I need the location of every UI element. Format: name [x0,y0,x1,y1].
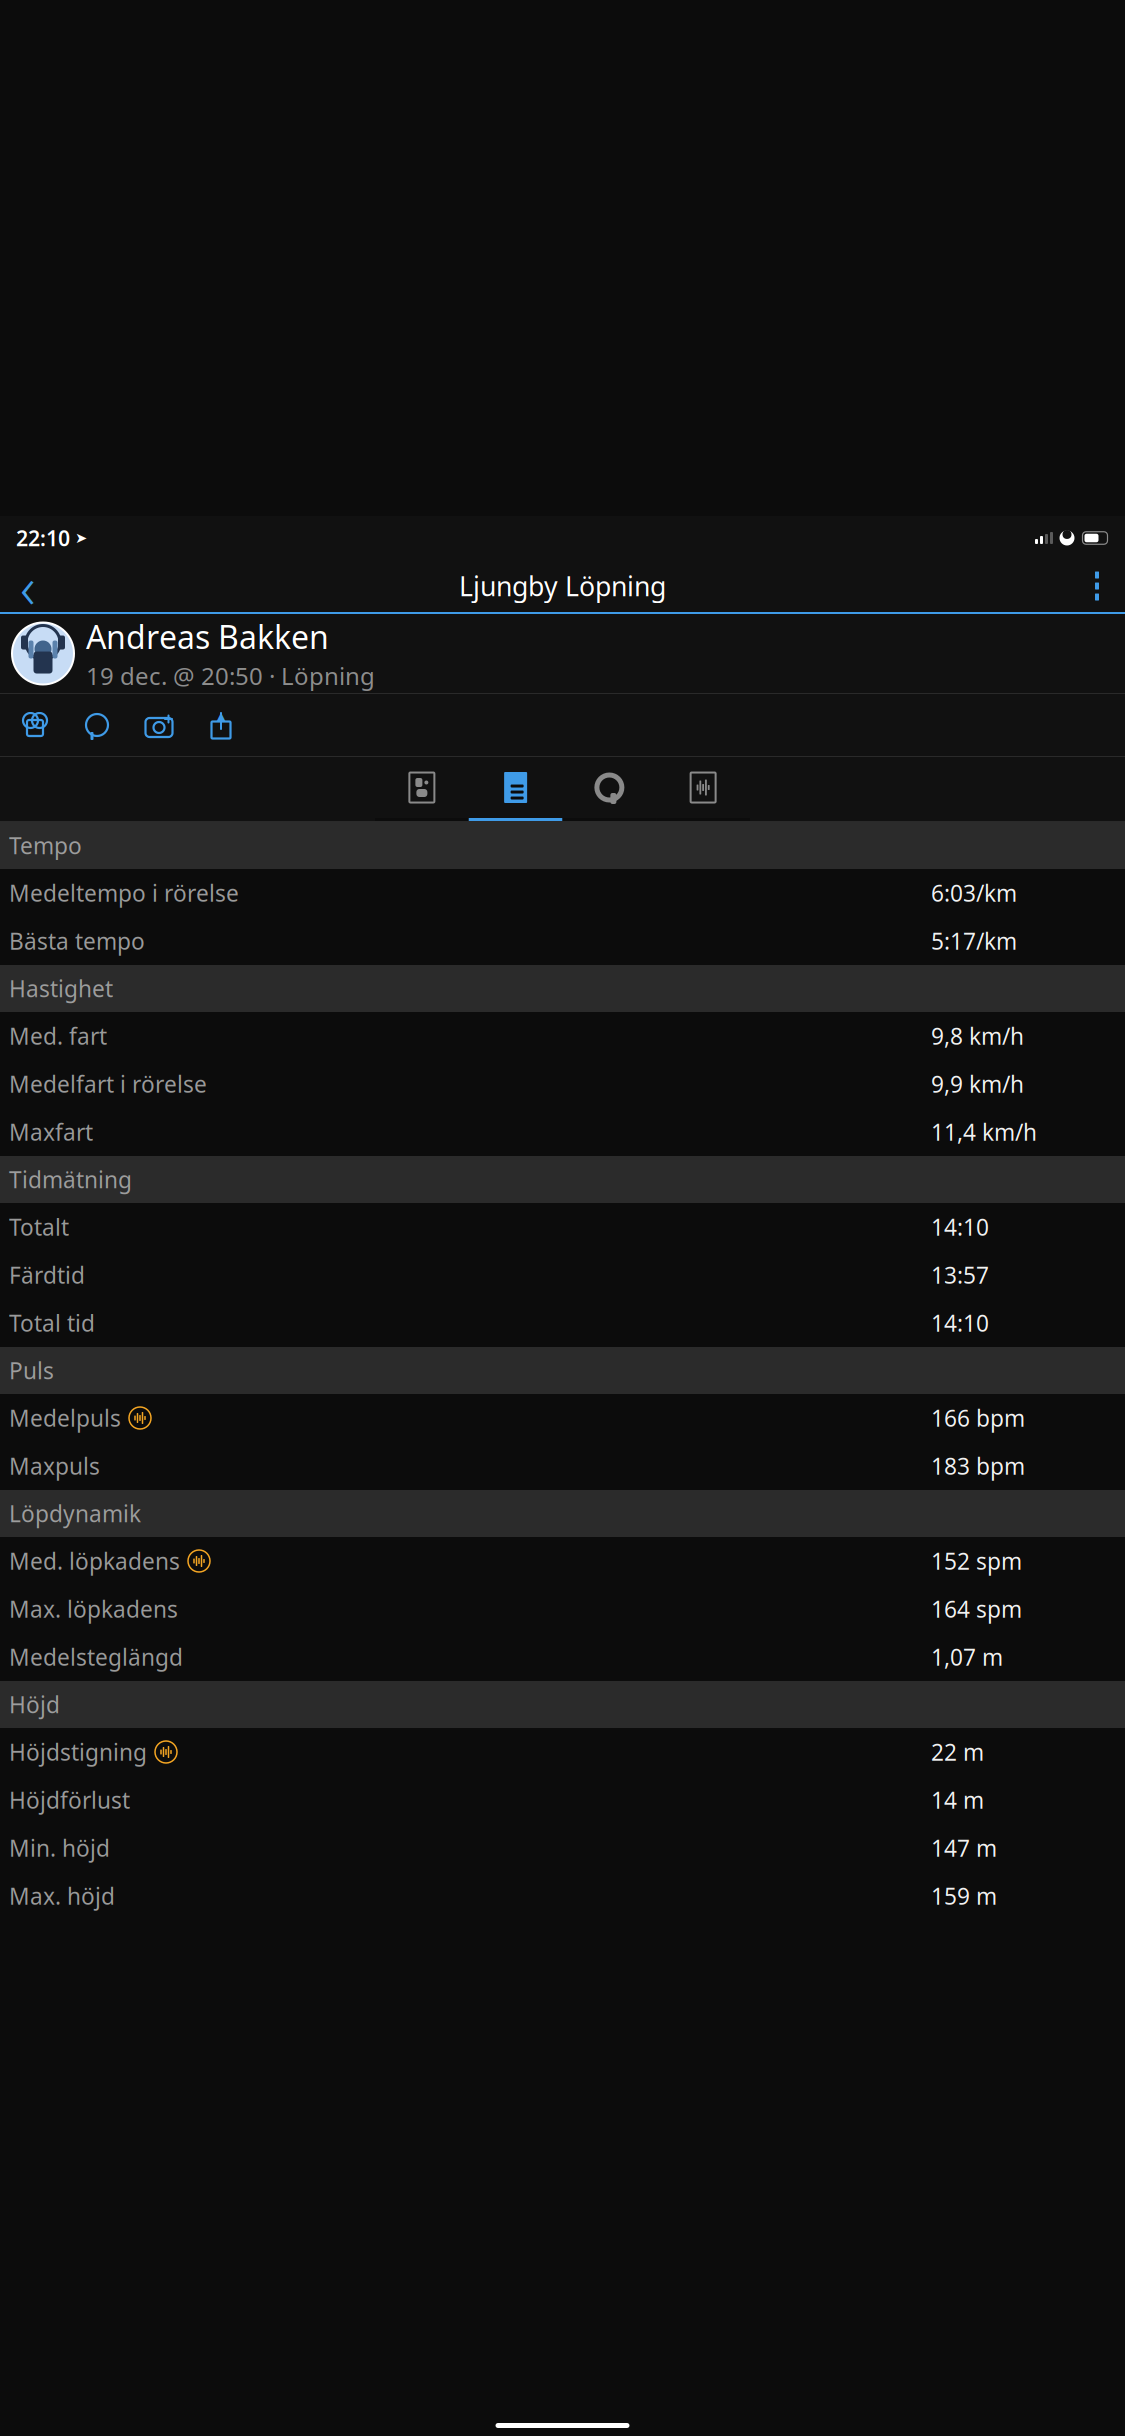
staticText: Total tid [9,1308,95,1338]
button[interactable]: Höjdförlust [0,1776,1125,1824]
staticText: Medeltempo i rörelse [9,878,239,908]
staticText: 6:03/km [931,878,1017,908]
staticText: Hastighet [9,973,113,1003]
staticText: Höjdstigning [9,1737,147,1767]
staticText: Höjdförlust [9,1785,130,1815]
button[interactable]: Med. löpkadens [0,1537,1125,1585]
staticText: 14:10 [931,1212,989,1242]
button[interactable]: More options [1075,564,1119,608]
staticText: Puls [9,1355,54,1385]
button[interactable]: Add photo [128,703,190,747]
button[interactable]: Min. höjd [0,1824,1125,1872]
staticText: Ljungby Löpning [459,568,666,604]
staticText: Medelpuls [9,1403,121,1433]
staticText: Höjd [9,1689,60,1719]
staticText: 183 bpm [931,1451,1025,1481]
staticText: 164 spm [931,1594,1022,1624]
button[interactable]: Map [375,757,469,821]
staticText: 13:57 [931,1260,989,1290]
staticText: 147 m [931,1833,997,1863]
staticText: Löpdynamik [9,1498,141,1528]
button[interactable]: Charts [656,757,750,821]
staticText: 159 m [931,1881,997,1911]
button[interactable]: Medelsteglängd [0,1633,1125,1681]
button[interactable]: Medelpuls [0,1394,1125,1442]
button[interactable]: Andreas Bakken [0,614,1125,693]
staticText: 11,4 km/h [931,1117,1037,1147]
staticText: 166 bpm [931,1403,1025,1433]
staticText: Maxpuls [9,1451,100,1481]
staticText: 9,8 km/h [931,1021,1024,1051]
staticText: ▲ [216,709,225,723]
button[interactable]: Maxpuls [0,1442,1125,1490]
staticText: ➤ [75,530,87,546]
staticText: Medelsteglängd [9,1642,183,1672]
button[interactable]: Färdtid [0,1251,1125,1299]
staticText: Med. löpkadens [9,1546,180,1576]
staticText: Max. höjd [9,1881,115,1911]
staticText: 1,07 m [931,1642,1003,1672]
staticText: Andreas Bakken [86,615,329,658]
button[interactable]: Totalt [0,1203,1125,1251]
staticText: 152 spm [931,1546,1022,1576]
button[interactable]: Bästa tempo [0,917,1125,965]
button[interactable]: Max. löpkadens [0,1585,1125,1633]
staticText: Färdtid [9,1260,85,1290]
staticText: Med. fart [9,1021,107,1051]
staticText: Tempo [9,830,82,860]
staticText: Bästa tempo [9,926,145,956]
button[interactable]: Total tid [0,1299,1125,1347]
button[interactable]: Höjdstigning [0,1728,1125,1776]
button[interactable]: Comment [66,703,128,747]
button[interactable]: Max. höjd [0,1872,1125,1920]
staticText: Maxfart [9,1117,93,1147]
staticText: 19 dec. @ 20:50 · Löpning [86,660,375,692]
staticText: 22:10 [16,524,70,552]
button[interactable]: Maxfart [0,1108,1125,1156]
staticText: Min. höjd [9,1833,110,1863]
staticText: 9,9 km/h [931,1069,1024,1099]
button[interactable]: Share [190,703,252,747]
staticText: 5:17/km [931,926,1017,956]
staticText: Max. löpkadens [9,1594,178,1624]
button[interactable]: Medeltempo i rörelse [0,869,1125,917]
button[interactable]: Laps [562,757,656,821]
staticText: ‹ [20,547,36,625]
staticText: Totalt [9,1212,69,1242]
button[interactable]: Back [6,564,50,608]
staticText: 14 m [931,1785,984,1815]
staticText: 22 m [931,1737,984,1767]
button[interactable]: Med. fart [0,1012,1125,1060]
staticText: 14:10 [931,1308,989,1338]
button[interactable]: Details [469,757,563,821]
staticText: Tidmätning [9,1164,132,1194]
button[interactable]: Medelfart i rörelse [0,1060,1125,1108]
button[interactable]: Like [4,703,66,747]
staticText: Medelfart i rörelse [9,1069,207,1099]
